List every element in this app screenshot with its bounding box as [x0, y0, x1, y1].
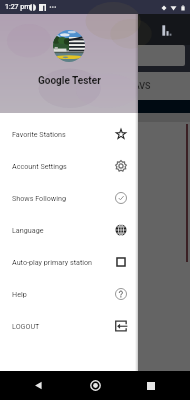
button[interactable]: Account Settings — [0, 150, 138, 182]
staticText: MY FAVS — [114, 81, 151, 92]
button[interactable]: Language — [0, 214, 138, 246]
staticText: Favorite Stations — [12, 130, 115, 138]
button[interactable]: Help — [0, 278, 138, 310]
staticText: Shows Following — [12, 194, 115, 202]
button[interactable]: Shows Following — [0, 182, 138, 214]
staticText: Language — [12, 226, 115, 234]
button[interactable]: Favorite Stations — [0, 118, 138, 150]
staticText: LOGOUT — [12, 322, 115, 330]
other: Home — [90, 380, 101, 391]
other: Back — [34, 381, 43, 390]
button[interactable]: Auto-play primary station — [0, 246, 138, 278]
staticText: 1:27 pm — [5, 3, 31, 11]
staticText: Auto-play primary station — [12, 258, 115, 266]
staticText: Account Settings — [12, 162, 115, 170]
staticText: Help — [12, 290, 115, 298]
staticText: Google Tester — [38, 75, 101, 87]
button[interactable]: LOGOUT — [0, 310, 138, 342]
